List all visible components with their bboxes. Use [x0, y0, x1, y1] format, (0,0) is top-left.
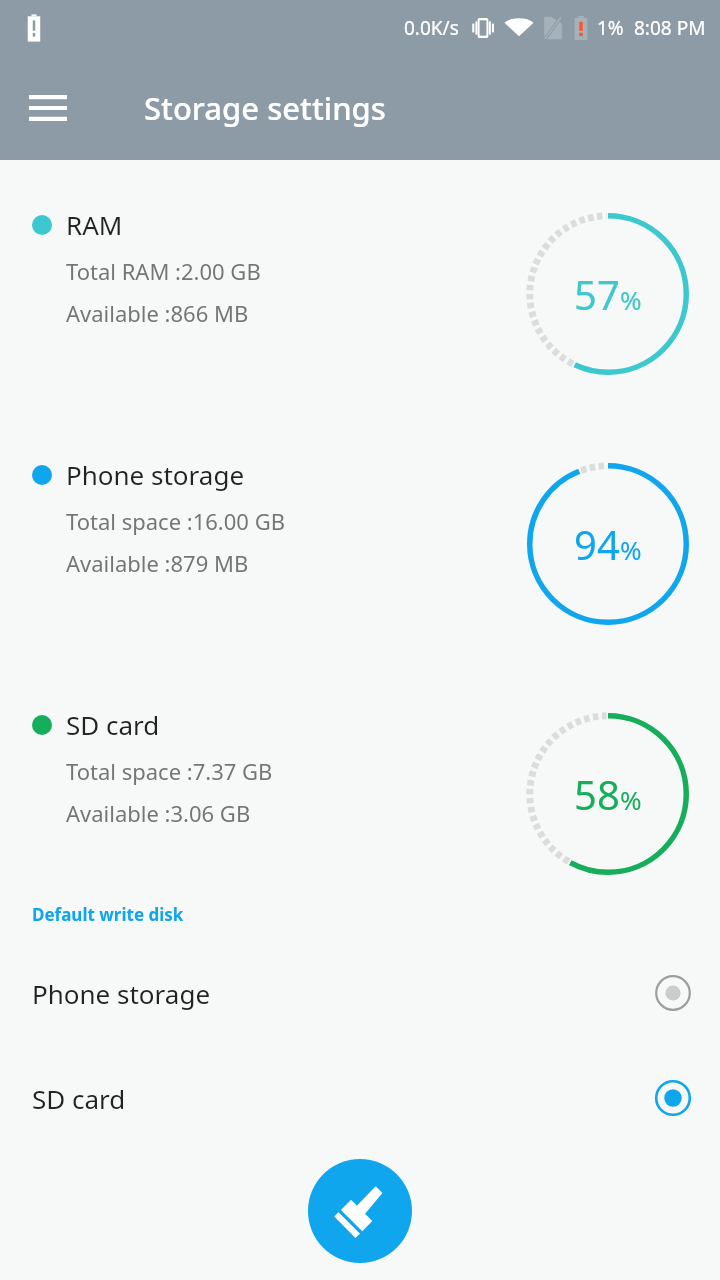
button[interactable]: Clean [308, 1159, 412, 1263]
staticText: 94 [574, 517, 620, 571]
button[interactable]: RAM [0, 207, 720, 377]
staticText: Total RAM :2.00 GB [66, 256, 261, 286]
staticText: Total space :16.00 GB [66, 506, 285, 536]
staticText: Phone storage [32, 976, 211, 1011]
staticText: Storage settings [144, 87, 386, 129]
staticText: 1% [597, 15, 624, 41]
staticText: RAM [66, 207, 123, 242]
staticText: SD card [66, 707, 160, 742]
staticText: % [620, 282, 642, 317]
staticText: SD card [32, 1081, 126, 1116]
button[interactable]: Open navigation menu [18, 78, 78, 138]
staticText: 0.0K/s [404, 15, 459, 41]
staticText: 8:08 PM [634, 15, 706, 41]
button[interactable]: Phone storage [0, 963, 720, 1023]
staticText: 58 [574, 767, 620, 821]
staticText: 57 [574, 267, 620, 321]
staticText: Available :879 MB [66, 548, 249, 578]
staticText: % [620, 532, 642, 567]
staticText: Total space :7.37 GB [66, 756, 273, 786]
button[interactable]: SD card [0, 707, 720, 877]
staticText: Phone storage [66, 457, 245, 492]
staticText: Default write disk [32, 903, 184, 926]
button[interactable]: SD card [0, 1068, 720, 1128]
staticText: % [620, 782, 642, 817]
staticText: Available :3.06 GB [66, 798, 251, 828]
staticText: Available :866 MB [66, 298, 249, 328]
button[interactable]: Phone storage [0, 457, 720, 627]
